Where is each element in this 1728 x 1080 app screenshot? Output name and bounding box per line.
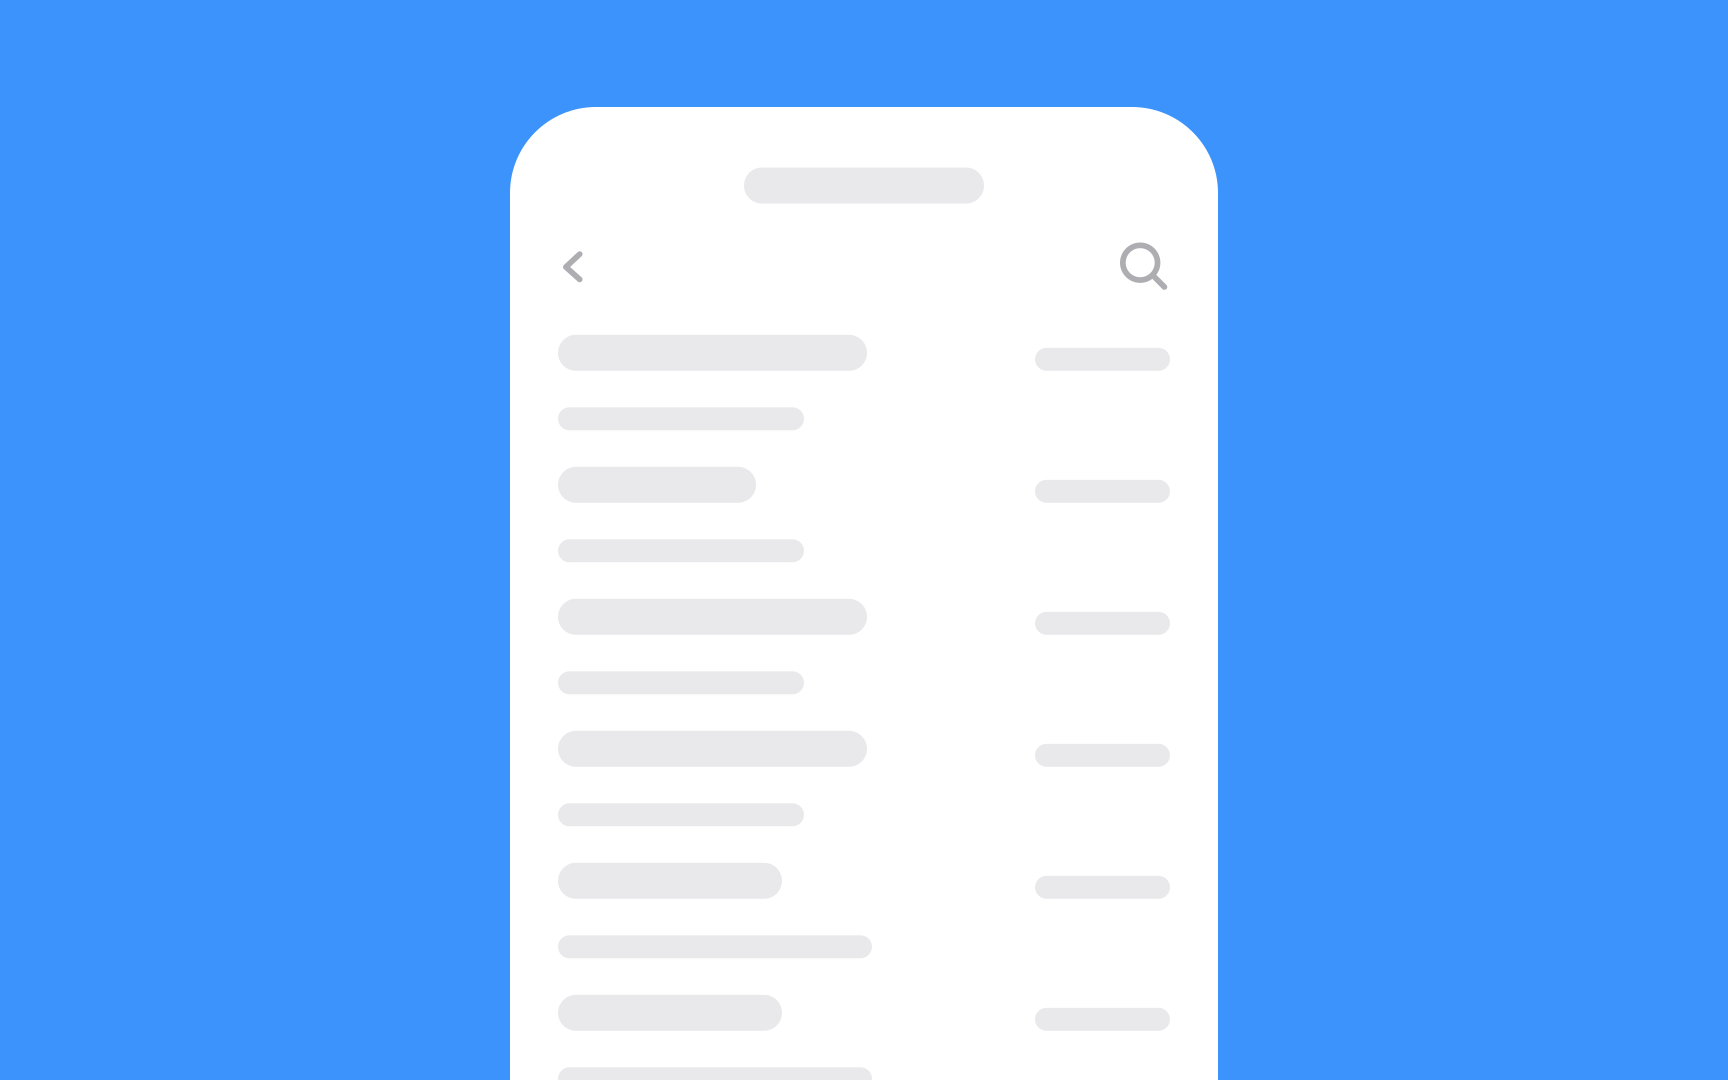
- button[interactable]: Back: [529, 222, 617, 310]
- button[interactable]: Search: [1100, 222, 1188, 310]
